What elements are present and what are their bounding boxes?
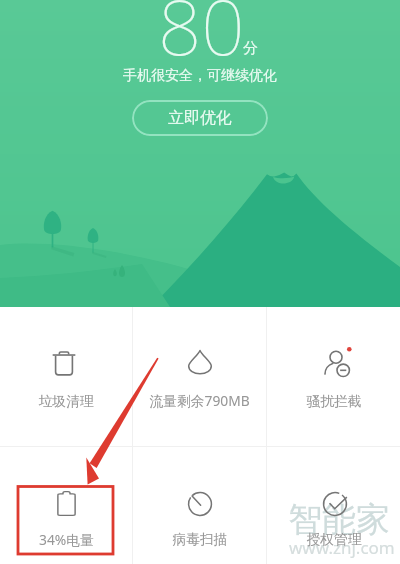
button[interactable]: 授权管理 xyxy=(267,447,400,564)
staticText: 分 xyxy=(243,39,258,58)
staticText: www.znj.com xyxy=(289,536,395,559)
button[interactable]: 立即优化 xyxy=(132,100,268,136)
button[interactable]: 34%电量 xyxy=(0,447,132,564)
staticText: 流量剩余790MB xyxy=(149,391,250,410)
button[interactable]: 骚扰拦截 xyxy=(267,307,400,446)
button[interactable]: 垃圾清理 xyxy=(0,307,132,446)
staticText: 手机很安全，可继续优化 xyxy=(123,67,277,85)
staticText: 智能家 xyxy=(288,498,390,541)
staticText: 授权管理 xyxy=(306,531,362,548)
staticText: 病毒扫描 xyxy=(172,531,228,548)
staticText: 立即优化 xyxy=(168,108,232,128)
staticText: 34%电量 xyxy=(39,530,94,549)
staticText: 垃圾清理 xyxy=(38,393,94,410)
button[interactable]: 流量剩余790MB xyxy=(133,307,266,446)
staticText: 骚扰拦截 xyxy=(306,393,362,410)
button[interactable]: 病毒扫描 xyxy=(133,447,266,564)
staticText: 80 xyxy=(158,0,245,78)
